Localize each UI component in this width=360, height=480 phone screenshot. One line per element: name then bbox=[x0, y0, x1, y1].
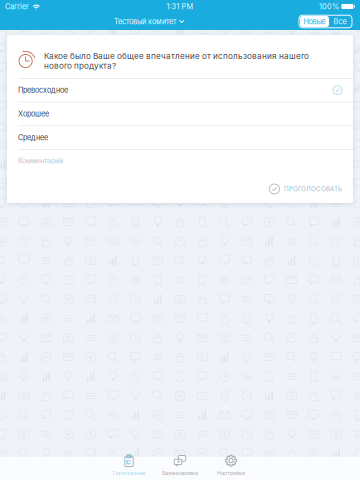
button[interactable]: Все bbox=[329, 16, 351, 27]
button[interactable]: ПРОГОЛОСОВАТЬ bbox=[269, 184, 342, 194]
staticText: 1:31 PM bbox=[166, 2, 193, 11]
button[interactable]: Голосование bbox=[103, 456, 154, 480]
staticText: Хорошее bbox=[18, 109, 49, 118]
staticText: Какое было Ваше общее впечатление от исп… bbox=[44, 51, 309, 71]
button[interactable]: Превосходное bbox=[7, 79, 353, 102]
staticText: Carrier bbox=[5, 2, 29, 11]
staticText: Превосходное bbox=[18, 86, 68, 95]
staticText: Голосование bbox=[112, 470, 145, 476]
staticText: ПРОГОЛОСОВАТЬ bbox=[284, 185, 342, 193]
button[interactable]: Новые bbox=[300, 16, 329, 27]
staticText: Новые bbox=[303, 17, 325, 26]
button[interactable]: Настройки bbox=[205, 456, 256, 480]
staticText: Настройки bbox=[217, 470, 245, 476]
staticText: Все bbox=[333, 17, 346, 26]
staticText: Тестовый комитет bbox=[114, 17, 176, 26]
staticText: 100% bbox=[319, 2, 339, 11]
button[interactable]: Балансировка bbox=[154, 456, 205, 480]
button[interactable]: Тестовый комитет bbox=[114, 17, 185, 26]
staticText: Среднее bbox=[18, 133, 48, 142]
button[interactable]: Хорошее bbox=[7, 102, 353, 125]
button[interactable]: Среднее bbox=[7, 126, 353, 149]
staticText: Комментарий bbox=[18, 157, 63, 165]
staticText: Балансировка bbox=[162, 470, 198, 476]
